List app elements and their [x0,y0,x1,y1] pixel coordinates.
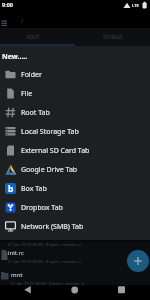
button[interactable]: b [0,179,150,198]
button[interactable]: STORAGE [75,28,150,46]
button[interactable] [109,285,134,300]
staticText: New..... [2,52,28,62]
staticText: Box Tab [21,184,47,194]
button[interactable] [17,285,42,300]
staticText: 01 Jan 70 01:00:00 0 bytes rwxrwx--x [8,242,82,248]
staticText: Google Drive Tab [21,165,78,175]
staticText: 01 Jan 70 01:00:00 0 bytes rwxrwx--x [11,281,85,287]
staticText: 9:00 [2,1,13,8]
staticText: Network (SMB) Tab [21,222,84,232]
button[interactable] [127,250,149,272]
staticText: Root Tab [21,108,50,118]
staticText: External SD Card Tab [21,146,90,156]
button[interactable]: Root Tab [0,103,150,122]
staticText: b [8,183,14,194]
staticText: / [21,17,24,25]
button[interactable]: Network (SMB) Tab [0,217,150,236]
button[interactable]: Dropbox Tab [0,198,150,217]
button[interactable]: Google Drive Tab [0,160,150,179]
button[interactable]: ROOT [0,28,67,46]
staticText: STORAGE [103,34,123,40]
button[interactable]: Folder [0,65,150,84]
staticText: 01 Jan 70 01:00:00 0 bytes rwxrwx--x [8,259,82,265]
staticText: ROOT [27,34,40,40]
button[interactable]: File [0,84,150,103]
staticText: LTE [132,3,139,8]
staticText: Dropbox Tab [21,203,63,213]
staticText: mnt [11,271,23,279]
button[interactable]: Local Storage Tab [0,122,150,141]
button[interactable] [62,285,87,300]
button[interactable]: External SD Card Tab [0,141,150,160]
staticText: Folder [21,70,42,80]
staticText: Local Storage Tab [21,127,79,137]
staticText: File [21,89,33,99]
staticText: init.rc [8,249,24,257]
